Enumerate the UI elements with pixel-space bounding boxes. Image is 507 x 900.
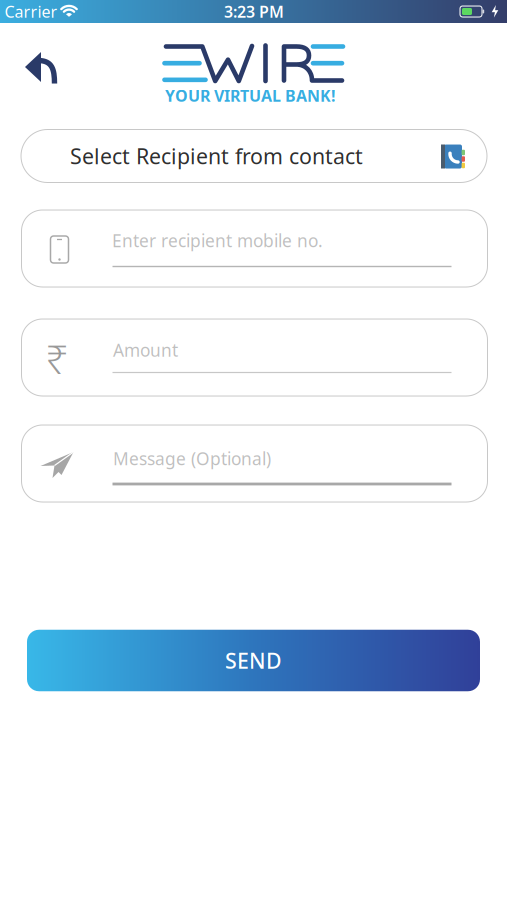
staticText: SEND bbox=[225, 646, 282, 675]
staticText: Select Recipient from contact bbox=[70, 142, 363, 170]
button[interactable]: Back bbox=[19, 45, 63, 89]
button[interactable]: ₹ bbox=[21, 319, 487, 396]
button[interactable]: Select Recipient from contact bbox=[21, 129, 487, 182]
staticText: Enter recipient mobile no. bbox=[112, 229, 323, 252]
button[interactable]: Message (Optional) bbox=[21, 425, 487, 502]
staticText: Carrier bbox=[4, 1, 57, 22]
staticText: ₹ bbox=[45, 332, 68, 385]
staticText: 3:23 PM bbox=[224, 1, 284, 22]
staticText: YOUR VIRTUAL BANK! bbox=[165, 85, 336, 106]
staticText: Amount bbox=[113, 338, 178, 361]
button[interactable]: SEND bbox=[27, 630, 480, 691]
staticText: Message (Optional) bbox=[113, 447, 271, 470]
button[interactable]: Enter recipient mobile no. bbox=[21, 210, 487, 287]
